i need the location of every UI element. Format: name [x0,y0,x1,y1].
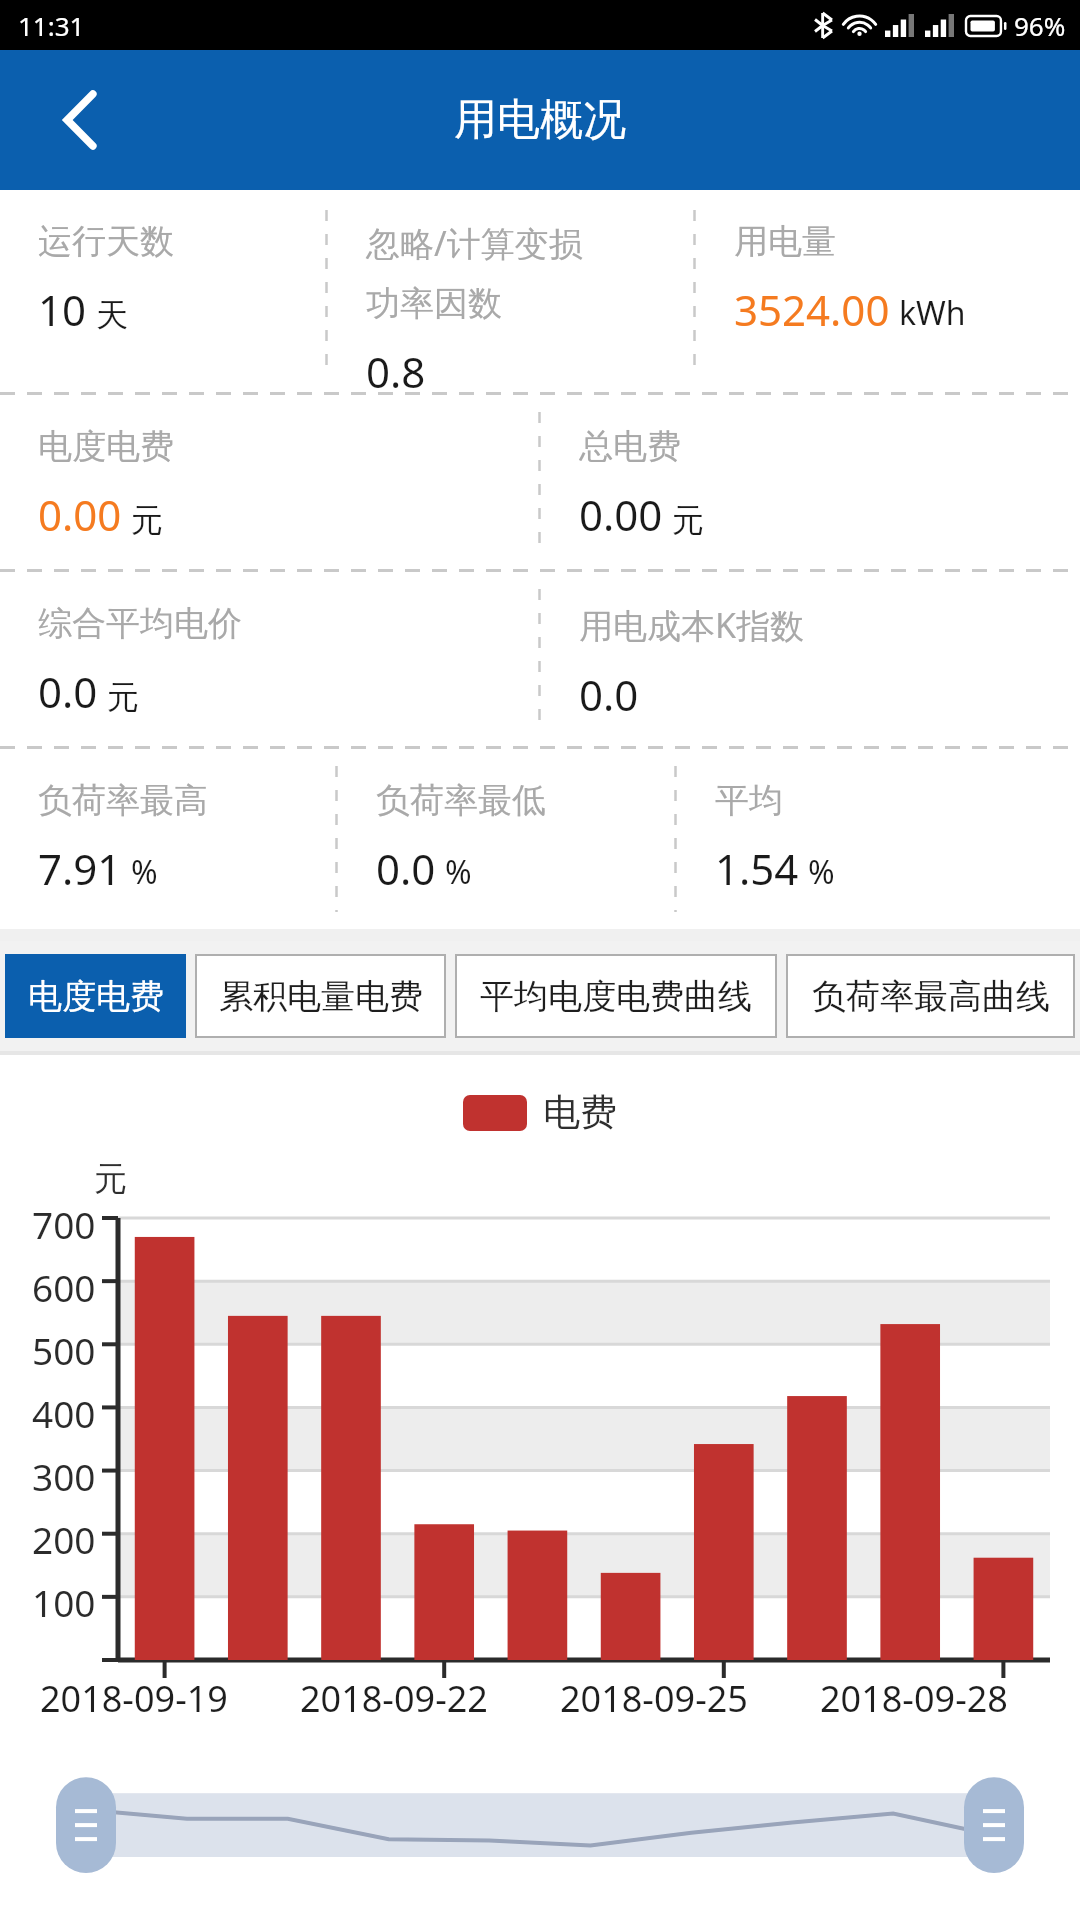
staticText: 600 [32,1262,96,1312]
button[interactable]: 电度电费 [0,395,538,569]
staticText: 平均 [715,779,783,822]
staticText: 用电概况 [454,93,626,147]
staticText: 功率因数 [366,282,502,325]
button[interactable]: Back [42,82,118,158]
staticText: 0.00 [38,486,122,543]
staticText: 200 [32,1514,96,1564]
button[interactable]: 总电费 [541,395,1080,569]
staticText: 负荷率最高曲线 [812,975,1050,1018]
staticText: 3524.00 [734,281,890,338]
staticText: 2018-09-22 [300,1674,560,1723]
staticText: 综合平均电价 [38,602,242,645]
staticText: 元 [107,677,139,717]
staticText: 元 [672,500,704,540]
staticText: % [131,850,158,894]
staticText: 平均电度电费曲线 [480,975,752,1018]
staticText: 96% [1014,8,1066,43]
staticText: 700 [32,1199,96,1249]
staticText: kWh [899,291,966,335]
staticText: 用电成本K指数 [579,602,805,648]
button[interactable]: 运行天数 [0,190,325,392]
staticText: 100 [32,1577,96,1627]
staticText: 总电费 [579,425,681,468]
button[interactable]: 累积电量电费 [195,954,446,1038]
staticText: 负荷率最低 [376,779,546,822]
staticText: 负荷率最高 [38,779,208,822]
staticText: 0.0 [38,663,98,720]
staticText: 10 [38,281,87,338]
staticText: 运行天数 [38,220,174,263]
button[interactable]: 用电成本K指数 [541,572,1080,746]
staticText: % [445,850,472,894]
staticText: 2018-09-28 [820,1674,1080,1723]
staticText: 11:31 [18,8,85,43]
button[interactable]: 负荷率最高曲线 [786,954,1075,1038]
button[interactable]: 负荷率最低 [338,749,674,929]
button[interactable]: 平均电度电费曲线 [455,954,777,1038]
button[interactable]: 忽略/计算变损 [328,190,693,392]
staticText: 电度电费 [28,975,164,1018]
staticText: 300 [32,1451,96,1501]
staticText: 天 [96,295,128,335]
staticText: 元 [94,1158,127,1200]
staticText: 7.91 [38,840,122,897]
staticText: 0.0 [376,840,436,897]
staticText: 电度电费 [38,425,174,468]
staticText: 电费 [543,1089,617,1136]
button[interactable]: 用电量 [696,190,1080,392]
staticText: 2018-09-25 [560,1674,820,1723]
staticText: 500 [32,1325,96,1375]
button[interactable]: 平均 [677,749,1080,929]
staticText: % [808,850,835,894]
staticText: 0.00 [579,486,663,543]
staticText: 1.54 [715,840,799,897]
staticText: 用电量 [734,220,836,263]
staticText: 2018-09-19 [40,1674,300,1723]
staticText: 400 [32,1388,96,1438]
button[interactable]: 负荷率最高 [0,749,335,929]
staticText: 忽略/计算变损 [366,220,583,266]
button[interactable]: Chart range slider [0,1769,1080,1879]
staticText: 累积电量电费 [219,975,423,1018]
staticText: 元 [131,500,163,540]
staticText: 0.8 [366,343,426,392]
staticText: 0.0 [579,666,639,723]
button[interactable]: 电度电费 [5,954,186,1038]
button[interactable]: 综合平均电价 [0,572,538,746]
